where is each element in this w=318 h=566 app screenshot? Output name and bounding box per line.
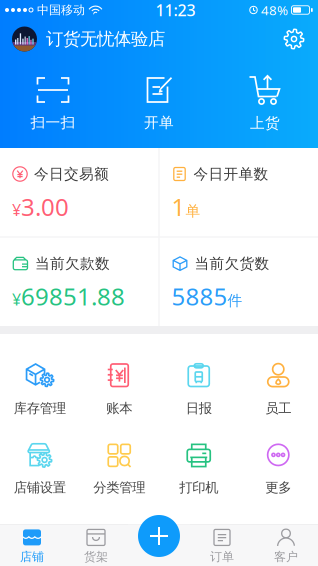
button[interactable]: 上货	[212, 74, 318, 132]
staticText: 1	[171, 191, 185, 222]
staticText: 扫一扫	[30, 113, 75, 131]
staticText: 分类管理	[93, 479, 145, 496]
staticText: 69851.88	[21, 280, 125, 312]
button[interactable]: 开单	[106, 74, 212, 131]
staticText: 店铺	[20, 549, 44, 564]
button[interactable]: 货架	[64, 523, 128, 566]
button[interactable]: Add	[138, 515, 180, 557]
button[interactable]: Settings	[270, 21, 318, 57]
staticText: 更多	[265, 479, 291, 496]
button[interactable]: 库存管理	[0, 350, 79, 429]
staticText: 当前欠款数	[35, 254, 110, 272]
staticText: 员工	[265, 400, 291, 416]
button[interactable]: 店铺	[0, 523, 64, 566]
button[interactable]: 日报	[159, 350, 238, 429]
staticText: 货架	[84, 549, 108, 564]
staticText: 中国移动	[37, 3, 85, 17]
staticText: 上货	[250, 114, 280, 132]
staticText: 订单	[210, 549, 234, 564]
button[interactable]: 客户	[254, 523, 318, 566]
staticText: 库存管理	[14, 400, 66, 416]
staticText: 3.00	[21, 191, 69, 222]
button[interactable]: 扫一扫	[0, 74, 106, 131]
staticText: 11:23	[155, 0, 195, 21]
staticText: 48%	[261, 1, 288, 19]
button[interactable]: 分类管理	[79, 429, 159, 509]
staticText: 单	[185, 202, 200, 220]
button[interactable]: 店铺设置	[0, 429, 79, 509]
staticText: 客户	[274, 549, 298, 564]
staticText: 件	[227, 291, 242, 309]
staticText: 日报	[186, 400, 212, 416]
button[interactable]: 更多	[238, 429, 318, 509]
staticText: 订货无忧体验店	[46, 28, 165, 50]
staticText: 账本	[106, 400, 132, 416]
staticText: ¥	[12, 199, 21, 220]
staticText: 当前欠货数	[194, 254, 269, 272]
staticText: ¥	[12, 288, 21, 310]
staticText: 今日交易额	[34, 165, 109, 183]
button[interactable]: 今日交易额	[0, 148, 158, 236]
button[interactable]: 订单	[190, 523, 254, 566]
staticText: 5885	[171, 280, 227, 312]
button[interactable]: 当前欠款数	[0, 237, 158, 326]
button[interactable]: 今日开单数	[159, 148, 318, 236]
button[interactable]: 账本	[79, 350, 159, 429]
button[interactable]: 员工	[238, 350, 318, 429]
staticText: 店铺设置	[14, 479, 66, 496]
button[interactable]: 当前欠货数	[159, 237, 318, 326]
staticText: 今日开单数	[193, 165, 268, 183]
button[interactable]: 打印机	[159, 429, 238, 509]
staticText: 开单	[144, 113, 174, 131]
staticText: 打印机	[179, 479, 218, 496]
